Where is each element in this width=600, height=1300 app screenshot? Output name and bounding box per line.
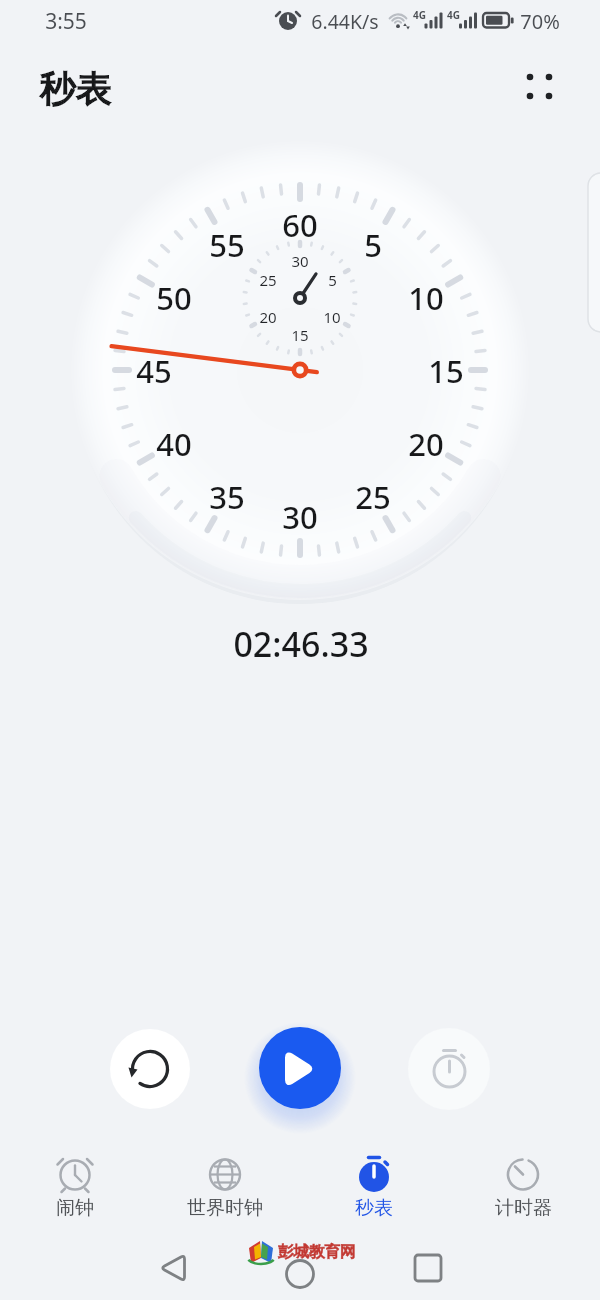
staticText: 15	[428, 350, 464, 390]
staticText: 计时器	[495, 1196, 552, 1220]
staticText: 20	[408, 423, 444, 463]
staticText: 20	[259, 307, 277, 327]
staticText: 彭城教育网	[278, 1242, 356, 1262]
staticText: 15	[291, 325, 309, 345]
button[interactable]	[408, 1028, 490, 1110]
staticText: 3:55	[45, 7, 87, 36]
staticText: 25	[259, 270, 277, 290]
button[interactable]: 闹钟	[15, 1146, 135, 1226]
button[interactable]	[144, 1240, 204, 1296]
button[interactable]	[270, 1246, 330, 1300]
staticText: 30	[291, 251, 309, 271]
staticText: 10	[323, 307, 341, 327]
staticText: 5	[328, 270, 337, 290]
staticText: 5	[364, 224, 382, 264]
staticText: 50	[156, 277, 192, 317]
button[interactable]: 世界时钟	[165, 1146, 285, 1226]
staticText: 世界时钟	[187, 1196, 263, 1220]
button[interactable]	[259, 1027, 341, 1109]
button[interactable]	[515, 62, 565, 112]
staticText: 6.44K/s	[311, 8, 379, 35]
staticText: 40	[156, 423, 192, 463]
staticText: 彭城教育网	[278, 1242, 356, 1262]
staticText: 55	[209, 224, 245, 264]
button[interactable]	[110, 1029, 190, 1109]
staticText: 70%	[520, 8, 560, 35]
staticText: 35	[209, 476, 245, 516]
staticText: 10	[408, 277, 444, 317]
staticText: 30	[282, 496, 318, 536]
button[interactable]: 秒表	[314, 1146, 434, 1226]
button[interactable]	[398, 1240, 458, 1296]
staticText: 秒表	[40, 66, 112, 111]
staticText: 25	[355, 476, 391, 516]
staticText: 02:46.33	[233, 621, 369, 667]
staticText: 4G	[413, 8, 426, 22]
staticText: 60	[282, 204, 318, 244]
staticText: 秒表	[40, 66, 112, 111]
staticText: 秒表	[355, 1196, 393, 1220]
staticText: 闹钟	[56, 1196, 94, 1220]
staticText: 45	[136, 350, 172, 390]
button[interactable]: 计时器	[463, 1146, 583, 1226]
staticText: 4G	[447, 8, 460, 22]
